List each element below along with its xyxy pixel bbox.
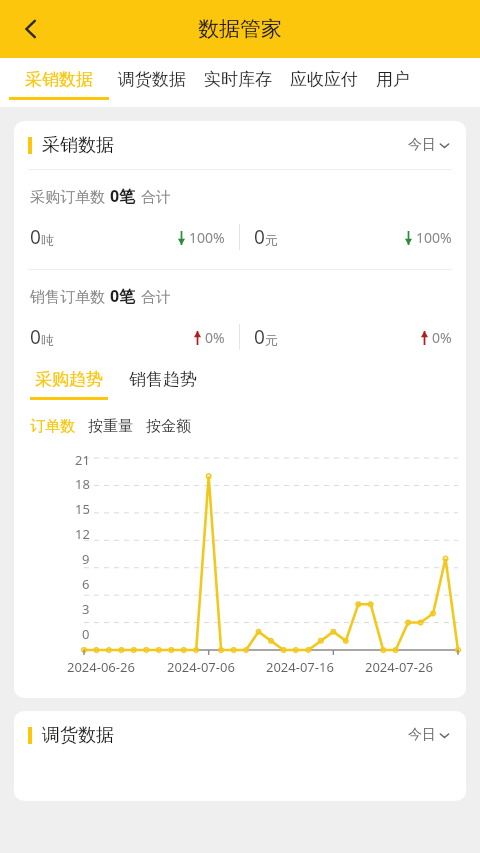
staticText: 0: [30, 324, 41, 350]
staticText: 按重量: [88, 417, 133, 436]
staticText: 订单数: [30, 417, 75, 436]
staticText: 应收应付: [290, 69, 358, 90]
button[interactable]: 今日: [408, 726, 450, 744]
staticText: 9: [82, 550, 90, 568]
staticText: 2024-06-26: [67, 658, 135, 676]
button[interactable]: 销售趋势: [124, 369, 202, 400]
staticText: 按金额: [146, 417, 191, 436]
button[interactable]: 采销数据: [9, 58, 109, 107]
staticText: 0%: [205, 328, 225, 347]
button[interactable]: 订单数: [30, 417, 75, 436]
button[interactable]: 按金额: [146, 417, 191, 436]
staticText: 0%: [432, 328, 452, 347]
staticText: 3: [82, 600, 90, 618]
button[interactable]: 采购趋势: [30, 369, 108, 400]
staticText: 采销数据: [25, 69, 93, 90]
staticText: 0笔: [110, 185, 136, 207]
staticText: 21: [75, 451, 90, 469]
button[interactable]: 用户: [367, 58, 419, 107]
staticText: 吨: [41, 332, 54, 348]
staticText: 0笔: [110, 285, 136, 307]
staticText: 0: [30, 224, 41, 250]
staticText: 15: [75, 500, 90, 518]
button[interactable]: Back: [8, 6, 54, 52]
staticText: 6: [82, 575, 90, 593]
staticText: 12: [75, 525, 90, 543]
staticText: 合计: [141, 188, 171, 207]
staticText: 实时库存: [204, 69, 272, 90]
staticText: 元: [265, 232, 278, 248]
staticText: 2024-07-26: [365, 658, 433, 676]
staticText: 0: [254, 224, 265, 250]
staticText: 吨: [41, 232, 54, 248]
staticText: 采销数据: [42, 134, 114, 157]
staticText: 今日: [408, 136, 436, 154]
staticText: 调货数据: [42, 724, 114, 747]
button[interactable]: 按重量: [88, 417, 133, 436]
staticText: 0: [254, 324, 265, 350]
staticText: 18: [75, 475, 90, 493]
staticText: 100%: [416, 228, 452, 247]
button[interactable]: 实时库存: [195, 58, 281, 107]
staticText: 数据管家: [198, 16, 282, 42]
staticText: 用户: [376, 69, 410, 90]
staticText: 今日: [408, 726, 436, 744]
staticText: 销售趋势: [129, 369, 197, 390]
button[interactable]: 今日: [408, 136, 450, 154]
staticText: 合计: [141, 288, 171, 307]
button[interactable]: 应收应付: [281, 58, 367, 107]
staticText: 销售订单数: [30, 288, 105, 307]
staticText: 2024-07-16: [266, 658, 334, 676]
staticText: 调货数据: [118, 69, 186, 90]
button[interactable]: 调货数据: [109, 58, 195, 107]
staticText: 2024-07-06: [167, 658, 235, 676]
staticText: 元: [265, 332, 278, 348]
staticText: 100%: [189, 228, 225, 247]
staticText: 0: [82, 625, 90, 643]
staticText: 采购订单数: [30, 188, 105, 207]
staticText: 采购趋势: [35, 369, 103, 390]
